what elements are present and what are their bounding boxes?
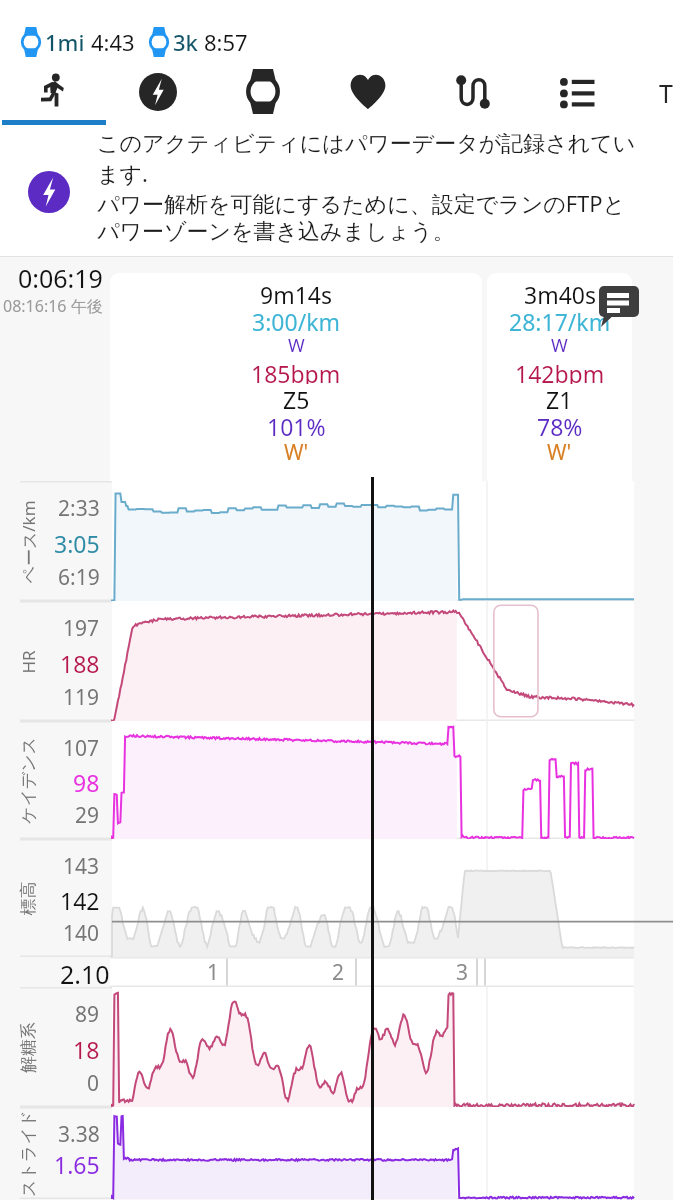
staticText: 4:43 [91,27,135,57]
staticText: ます. [97,158,148,188]
staticText: 78% [537,411,583,438]
staticText: パワー解析を可能にするために、設定でランのFTPと [97,188,626,218]
button[interactable]: Power [105,64,210,128]
staticText: 3:00/km [252,306,340,333]
button[interactable]: Comments [595,282,643,330]
staticText: 9m14s [260,279,332,306]
staticText: このアクティビティにはパワーデータが記録されてい [97,130,636,158]
staticText: 2.10 [60,957,110,987]
button[interactable]: Activity [0,64,105,128]
staticText: 98 [73,767,100,798]
staticText: 197 [63,614,100,643]
button[interactable]: Device [210,64,315,128]
staticText: 3k [173,27,198,57]
staticText: 3:05 [54,528,100,559]
staticText: 1mi [45,27,85,57]
staticText: 28:17/km [509,306,611,333]
staticText: 3m40s [524,279,596,306]
staticText: 08:16:16 午後 [3,295,103,317]
staticText: 0 [87,1069,100,1098]
staticText: 解糖系 [18,1022,39,1073]
staticText: 101% [267,411,326,438]
staticText: 18 [73,1034,100,1065]
staticText: HR [16,649,39,673]
staticText: 107 [63,734,100,763]
staticText: 188 [60,648,100,679]
button[interactable]: Route [420,64,525,128]
staticText: 6:19 [58,563,100,592]
button[interactable]: Laps [525,64,630,128]
staticText: 0:06:19 [18,261,103,295]
staticText: W [551,333,568,358]
staticText: T [659,76,673,110]
button[interactable]: 3m40s [487,273,632,481]
button[interactable]: 9m14s [110,273,482,481]
staticText: 8:57 [204,27,248,57]
staticText: 89 [75,1000,100,1029]
staticText: W' [284,438,309,464]
button[interactable]: Heart rate [315,64,420,128]
staticText: 2:33 [58,494,100,523]
staticText: 3.38 [58,1120,100,1149]
staticText: Z5 [283,384,310,411]
staticText: 185bpm [251,358,341,384]
staticText: 142bpm [515,358,605,384]
staticText: 1.65 [54,1149,100,1180]
button[interactable]: このアクティビティにはパワーデータが記録されてい [0,128,673,256]
staticText: 標高 [17,881,38,915]
staticText: ストライド [18,1110,39,1197]
staticText: 2 [332,958,345,987]
staticText: ペース/km [16,499,39,583]
staticText: 119 [63,683,100,712]
staticText: 3 [456,958,469,987]
staticText: Z1 [546,384,573,411]
staticText: W [288,333,305,358]
staticText: 143 [63,852,100,881]
staticText: 29 [75,801,100,830]
staticText: パワーゾーンを書き込みましょう。 [97,218,455,246]
staticText: 142 [60,885,100,916]
staticText: 140 [63,919,100,948]
staticText: ケイデンス [18,737,39,824]
staticText: W' [547,438,572,464]
staticText: 1 [207,958,220,987]
